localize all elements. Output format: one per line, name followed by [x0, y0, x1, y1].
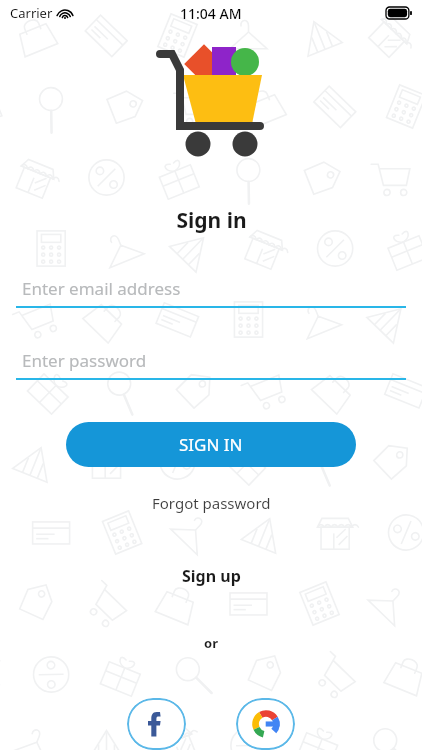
button[interactable]: Enter email address	[16, 277, 406, 308]
staticText: Carrier	[10, 4, 53, 22]
staticText: 11:04 AM	[180, 4, 242, 23]
button[interactable]: Forgot password	[140, 489, 283, 517]
button[interactable]: Enter password	[16, 349, 406, 380]
staticText: Sign in	[176, 206, 247, 235]
staticText: SIGN IN	[179, 433, 243, 456]
button[interactable]: Sign in with Facebook	[127, 698, 186, 750]
staticText: Enter password	[22, 349, 147, 372]
button[interactable]: SIGN IN	[66, 422, 356, 467]
button[interactable]: Sign up	[170, 561, 253, 591]
staticText: or	[204, 634, 218, 652]
staticText: Sign up	[182, 565, 241, 587]
staticText: Forgot password	[152, 493, 271, 513]
staticText: Enter email address	[22, 277, 181, 300]
button[interactable]: Sign in with Google	[236, 698, 295, 750]
